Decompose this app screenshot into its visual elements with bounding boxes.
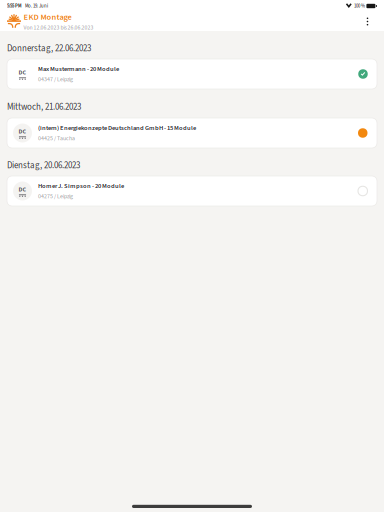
staticText: 04275 / Leipzig — [38, 192, 73, 201]
staticText: Dienstag, 20.06.2023 — [7, 159, 80, 172]
staticText: DC — [18, 127, 26, 136]
staticText: 5:55 PM — [7, 3, 22, 9]
staticText: 100 % — [352, 3, 365, 9]
staticText: DC — [18, 185, 26, 194]
staticText: (intern) Energiekonzepte Deutschland Gmb… — [38, 123, 196, 133]
button[interactable]: DC — [7, 176, 377, 206]
staticText: Max Mustermann - 20 Module — [38, 64, 119, 74]
staticText: Donnerstag, 22.06.2023 — [7, 42, 91, 55]
staticText: 04425 / Taucha — [38, 134, 75, 143]
staticText: Mittwoch, 21.06.2023 — [7, 101, 81, 113]
staticText: 04347 / Leipzig — [38, 75, 73, 84]
button[interactable]: More options — [358, 12, 377, 31]
staticText: Homer J. Simpson - 20 Module — [38, 181, 124, 191]
button[interactable]: DC — [7, 59, 377, 89]
staticText: Von 12.06.2023 bis 26.06.2023 — [23, 24, 93, 32]
staticText: Mo. 19. Juni — [22, 3, 48, 9]
staticText: EKD Montage — [23, 11, 71, 23]
staticText: DC — [18, 68, 26, 77]
button[interactable]: DC — [7, 118, 377, 148]
